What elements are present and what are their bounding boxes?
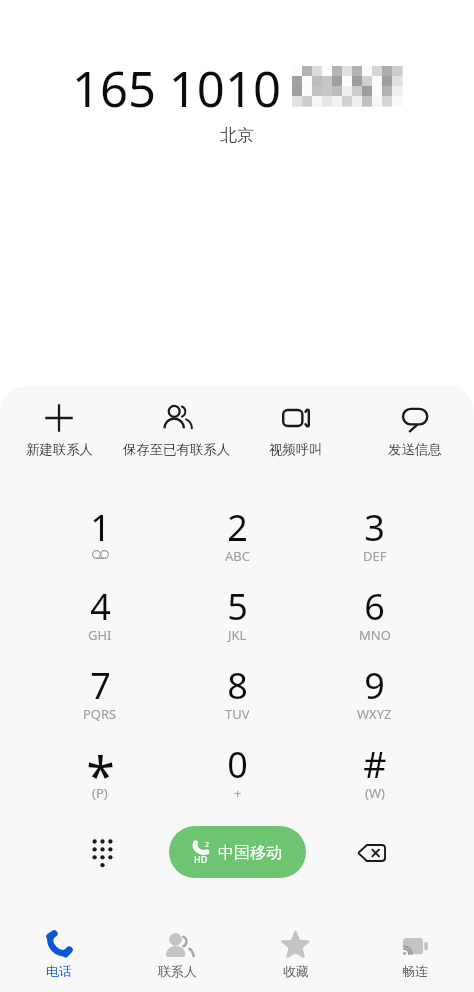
button[interactable]: # — [306, 738, 443, 817]
button[interactable]: 视频呼叫 — [236, 399, 355, 471]
staticText: 2 — [227, 503, 248, 552]
button[interactable]: 保存至已有联系人 — [118, 399, 236, 471]
button[interactable]: Dialpad options — [79, 830, 125, 876]
button[interactable]: 8 — [169, 659, 306, 738]
staticText: 4 — [90, 582, 111, 631]
staticText: 8 — [227, 661, 248, 710]
staticText: 保存至已有联系人 — [123, 441, 231, 458]
staticText: 7 — [90, 661, 111, 710]
staticText: DEF — [363, 547, 387, 565]
staticText: 视频呼叫 — [269, 441, 323, 458]
button[interactable]: 联系人 — [118, 910, 236, 992]
staticText: PQRS — [83, 705, 117, 723]
staticText: 发送信息 — [388, 441, 442, 458]
staticText: # — [363, 740, 387, 789]
staticText: 联系人 — [158, 963, 197, 979]
staticText: 5 — [227, 582, 248, 631]
staticText: 畅连 — [402, 963, 428, 979]
staticText: GHI — [88, 626, 112, 644]
staticText: WXYZ — [357, 705, 392, 723]
button[interactable]: 6 — [306, 580, 443, 659]
staticText: * — [86, 739, 115, 810]
staticText: + — [234, 784, 242, 802]
staticText: (P) — [92, 784, 108, 802]
button[interactable]: 0 — [169, 738, 306, 817]
button[interactable]: 3 — [306, 501, 443, 580]
staticText: 1 — [90, 503, 111, 552]
button[interactable]: 1 — [31, 501, 169, 580]
staticText: 9 — [364, 661, 385, 710]
button[interactable]: 畅连 — [355, 910, 474, 992]
staticText: 0 — [227, 740, 248, 789]
staticText: 2 — [205, 840, 210, 850]
button[interactable]: 2 — [169, 501, 306, 580]
staticText: ABC — [225, 547, 250, 565]
button[interactable]: * — [31, 738, 169, 817]
staticText: 电话 — [46, 963, 72, 979]
button[interactable]: Delete — [347, 829, 395, 877]
button[interactable]: 收藏 — [236, 910, 355, 992]
staticText: 6 — [364, 582, 385, 631]
staticText: HD — [194, 853, 208, 865]
button[interactable]: 4 — [31, 580, 169, 659]
button[interactable]: 新建联系人 — [0, 399, 118, 471]
staticText: 中国移动 — [218, 843, 282, 863]
staticText: 北京 — [220, 125, 254, 146]
staticText: MNO — [359, 626, 391, 644]
staticText: 3 — [364, 503, 385, 552]
button[interactable]: 电话 — [0, 910, 118, 992]
staticText: 收藏 — [283, 963, 309, 979]
staticText: TUV — [225, 705, 250, 723]
staticText: JKL — [228, 626, 247, 644]
staticText: 新建联系人 — [26, 441, 93, 458]
button[interactable]: 9 — [306, 659, 443, 738]
button[interactable]: 2 — [169, 826, 306, 878]
button[interactable]: 7 — [31, 659, 169, 738]
staticText: 165 1010 — [72, 55, 281, 122]
button[interactable]: 发送信息 — [355, 399, 474, 471]
button[interactable]: 5 — [169, 580, 306, 659]
staticText: (W) — [365, 784, 385, 802]
